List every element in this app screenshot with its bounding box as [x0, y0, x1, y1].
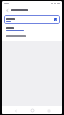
- button[interactable]: Home: [29, 107, 36, 114]
- button[interactable]: Back: [4, 7, 10, 13]
- button[interactable]: Recent apps: [45, 107, 52, 114]
- button[interactable]: Selected option: [4, 15, 60, 24]
- button[interactable]: Back: [12, 107, 19, 114]
- button[interactable]: Selected option: [53, 17, 58, 22]
- button[interactable]: [2, 25, 62, 33]
- button[interactable]: [2, 33, 62, 39]
